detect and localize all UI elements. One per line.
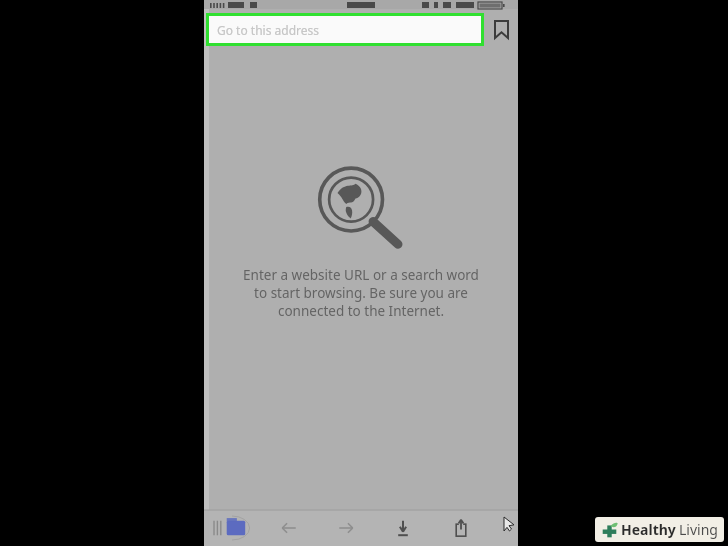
staticText: Living	[679, 520, 718, 539]
button[interactable]: Back	[260, 510, 317, 546]
button[interactable]: Go to this address	[209, 16, 481, 43]
staticText: Healthy	[621, 520, 676, 539]
button[interactable]: Tabs	[204, 510, 260, 546]
button[interactable]: Downloads	[374, 510, 432, 546]
button[interactable]: Share	[432, 510, 490, 546]
button[interactable]: Bookmarks	[484, 9, 518, 49]
staticText: Go to this address	[217, 22, 320, 38]
staticText: Enter a website URL or a search word to …	[235, 266, 487, 320]
button[interactable]: Forward	[317, 510, 374, 546]
